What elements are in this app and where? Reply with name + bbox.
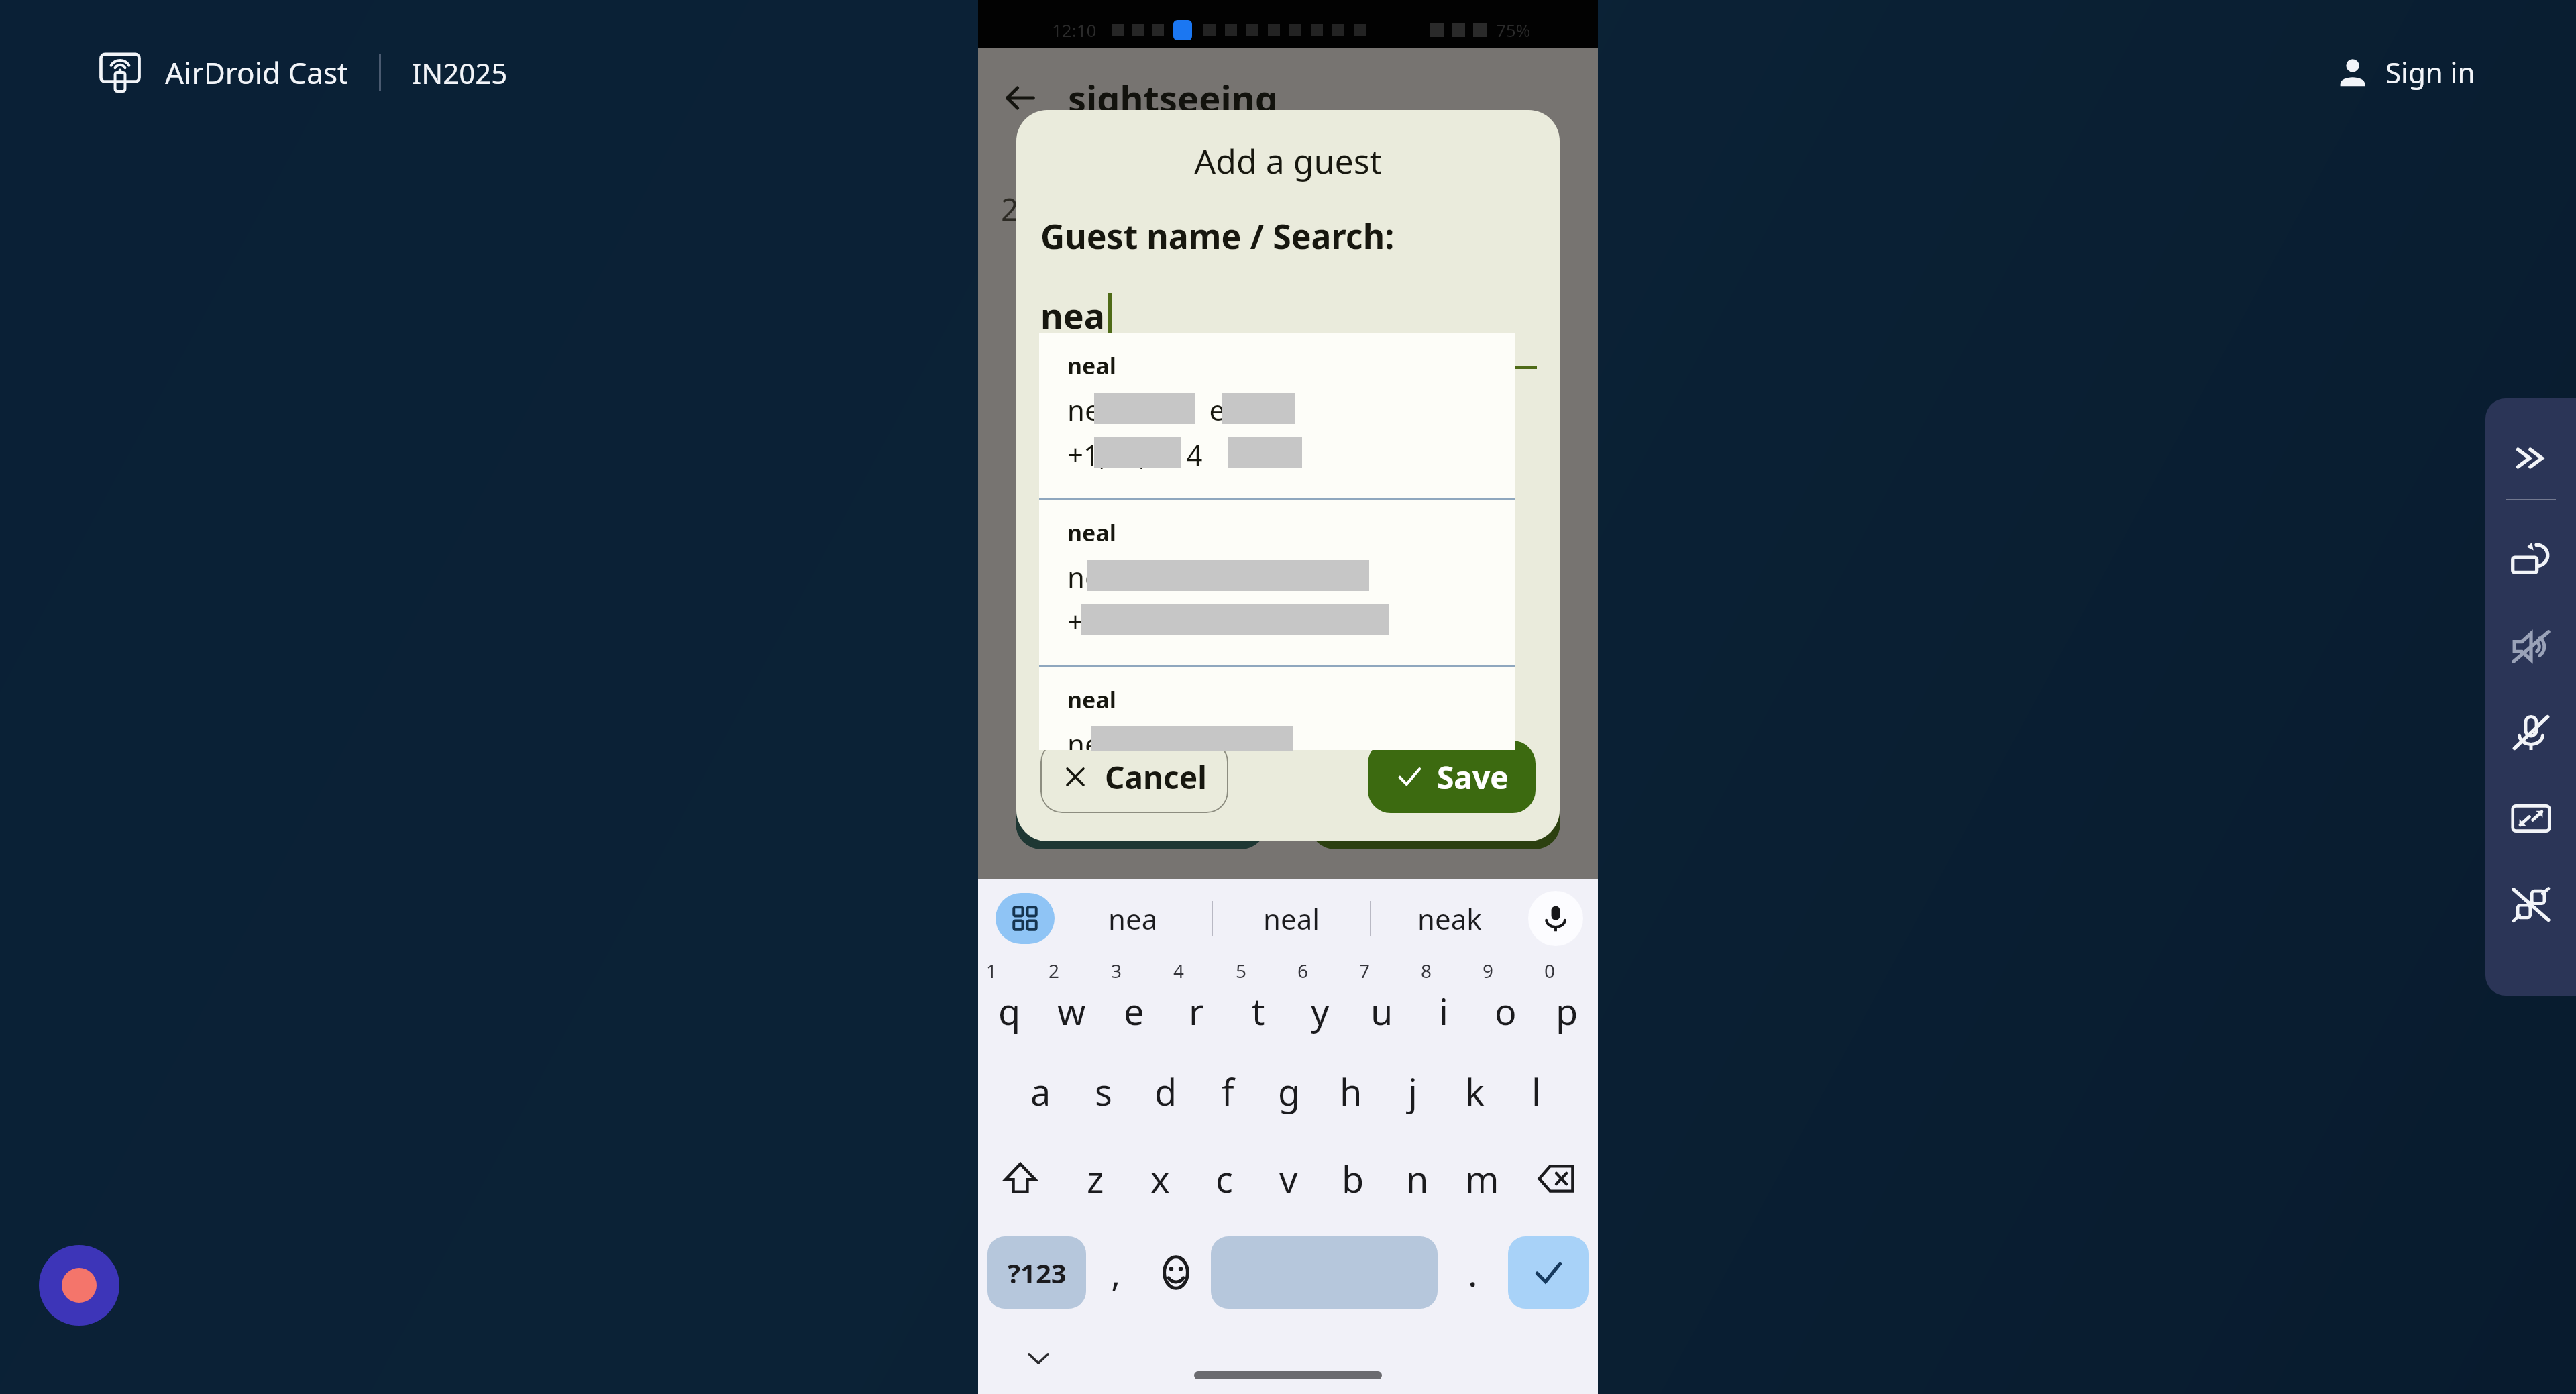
button[interactable]: 7 [1351, 961, 1413, 1048]
staticText: IN2025 [412, 54, 508, 92]
staticText: 75% [1496, 18, 1531, 42]
button[interactable]: . [1443, 1222, 1503, 1323]
button[interactable]: 3 [1103, 961, 1165, 1048]
staticText: 56 [1504, 498, 1535, 535]
staticText: 1 [986, 958, 998, 983]
button[interactable]: neal [1039, 667, 1515, 750]
staticText: 6 [1297, 958, 1309, 983]
staticText: Save [1437, 756, 1509, 798]
staticText: nea [1108, 900, 1158, 938]
staticText: i [1439, 986, 1448, 1036]
button[interactable]: Disconnect [2485, 861, 2576, 947]
button[interactable]: Voice input [1528, 891, 1583, 946]
button[interactable]: Full screen [2485, 775, 2576, 861]
button[interactable]: nea [1055, 879, 1212, 958]
staticText: Sign in [2385, 53, 2475, 91]
button[interactable]: , [1086, 1222, 1146, 1323]
button[interactable]: s [1072, 1048, 1134, 1135]
staticText: AirDroid Cast [165, 52, 348, 93]
button[interactable]: z [1063, 1135, 1128, 1222]
button[interactable]: Rotate screen [2485, 518, 2576, 604]
staticText: Scan [1126, 785, 1198, 827]
staticText: +1,20,49 4 [1067, 435, 1203, 474]
button[interactable]: Cancel [1040, 741, 1228, 813]
button[interactable]: Scan [1016, 762, 1267, 849]
staticText: Share [1412, 785, 1499, 827]
staticText: m [1465, 1154, 1499, 1203]
staticText: 12:10 [1052, 18, 1097, 42]
button[interactable]: Mute audio [2485, 604, 2576, 690]
button[interactable]: Space [1211, 1236, 1438, 1309]
button[interactable]: l [1505, 1048, 1567, 1135]
button[interactable]: 5 [1228, 961, 1289, 1048]
button[interactable]: neal [1039, 333, 1515, 498]
button[interactable]: a [1010, 1048, 1072, 1135]
button[interactable]: Recording indicator [39, 1245, 119, 1326]
button[interactable]: Keyboard options [996, 893, 1055, 944]
staticText: ?123 [1008, 1254, 1067, 1291]
staticText: Cancel [1105, 756, 1207, 798]
button[interactable]: 8 [1413, 961, 1474, 1048]
staticText: 7 [1359, 958, 1371, 983]
button[interactable]: n [1385, 1135, 1450, 1222]
staticText: 2 [1049, 958, 1060, 983]
staticText: neak [1417, 900, 1482, 938]
staticText: . [1468, 1248, 1478, 1297]
button[interactable]: AirDroid Cast [99, 52, 508, 93]
button[interactable]: nea [1040, 291, 1112, 339]
staticText: neal [1067, 350, 1116, 381]
button[interactable]: 0 [1536, 961, 1598, 1048]
staticText: x [1150, 1154, 1170, 1203]
button[interactable]: f [1197, 1048, 1258, 1135]
button[interactable]: x [1128, 1135, 1192, 1222]
button[interactable]: 9 [1474, 961, 1536, 1048]
button[interactable]: c [1192, 1135, 1256, 1222]
staticText: o [1495, 986, 1517, 1036]
button[interactable]: 1 [978, 961, 1040, 1048]
staticText: neal [1067, 684, 1116, 715]
button[interactable]: d [1134, 1048, 1197, 1135]
staticText: a [1030, 1067, 1051, 1116]
button[interactable]: h [1320, 1048, 1382, 1135]
button[interactable]: 2 [1040, 961, 1103, 1048]
button[interactable]: v [1256, 1135, 1321, 1222]
button[interactable]: j [1382, 1048, 1444, 1135]
button[interactable]: Shift [978, 1135, 1063, 1222]
staticText: y [1311, 986, 1330, 1036]
staticText: b [1342, 1154, 1364, 1203]
staticText: Guest name / Search: [1040, 213, 1395, 259]
staticText: v [1279, 1154, 1298, 1203]
button[interactable]: Mute microphone [2485, 690, 2576, 775]
staticText: nea ve.com [1067, 725, 1263, 750]
button[interactable]: Enter [1508, 1236, 1589, 1309]
staticText: g [1278, 1067, 1301, 1116]
staticText: Add a guest [1016, 138, 1560, 184]
staticText: k [1465, 1067, 1485, 1116]
staticText: e [1124, 986, 1144, 1036]
staticText: w [1057, 986, 1086, 1036]
button[interactable]: 4 [1165, 961, 1228, 1048]
staticText: sightseeing [1068, 73, 1278, 123]
button[interactable]: neak [1371, 879, 1528, 958]
button[interactable]: neal [1039, 500, 1515, 665]
button[interactable]: k [1444, 1048, 1505, 1135]
button[interactable]: Sign in [2337, 53, 2475, 91]
staticText: p [1556, 986, 1578, 1036]
button[interactable]: b [1321, 1135, 1385, 1222]
button[interactable]: g [1258, 1048, 1320, 1135]
button[interactable]: ?123 [987, 1236, 1086, 1309]
button[interactable]: Save [1368, 741, 1536, 813]
button[interactable]: Share [1309, 762, 1560, 849]
button[interactable]: Collapse toolbar [2502, 429, 2560, 487]
staticText: neal [1263, 900, 1320, 938]
staticText: s [1095, 1067, 1112, 1116]
button[interactable]: Emoji [1146, 1222, 1205, 1323]
button[interactable]: Backspace [1514, 1135, 1598, 1222]
button[interactable]: neal [1213, 879, 1370, 958]
staticText: h [1340, 1067, 1362, 1116]
button[interactable]: 6 [1289, 961, 1351, 1048]
staticText: j [1408, 1067, 1417, 1116]
staticText: q [998, 986, 1021, 1036]
staticText: 3 [1111, 958, 1122, 983]
button[interactable]: m [1450, 1135, 1514, 1222]
